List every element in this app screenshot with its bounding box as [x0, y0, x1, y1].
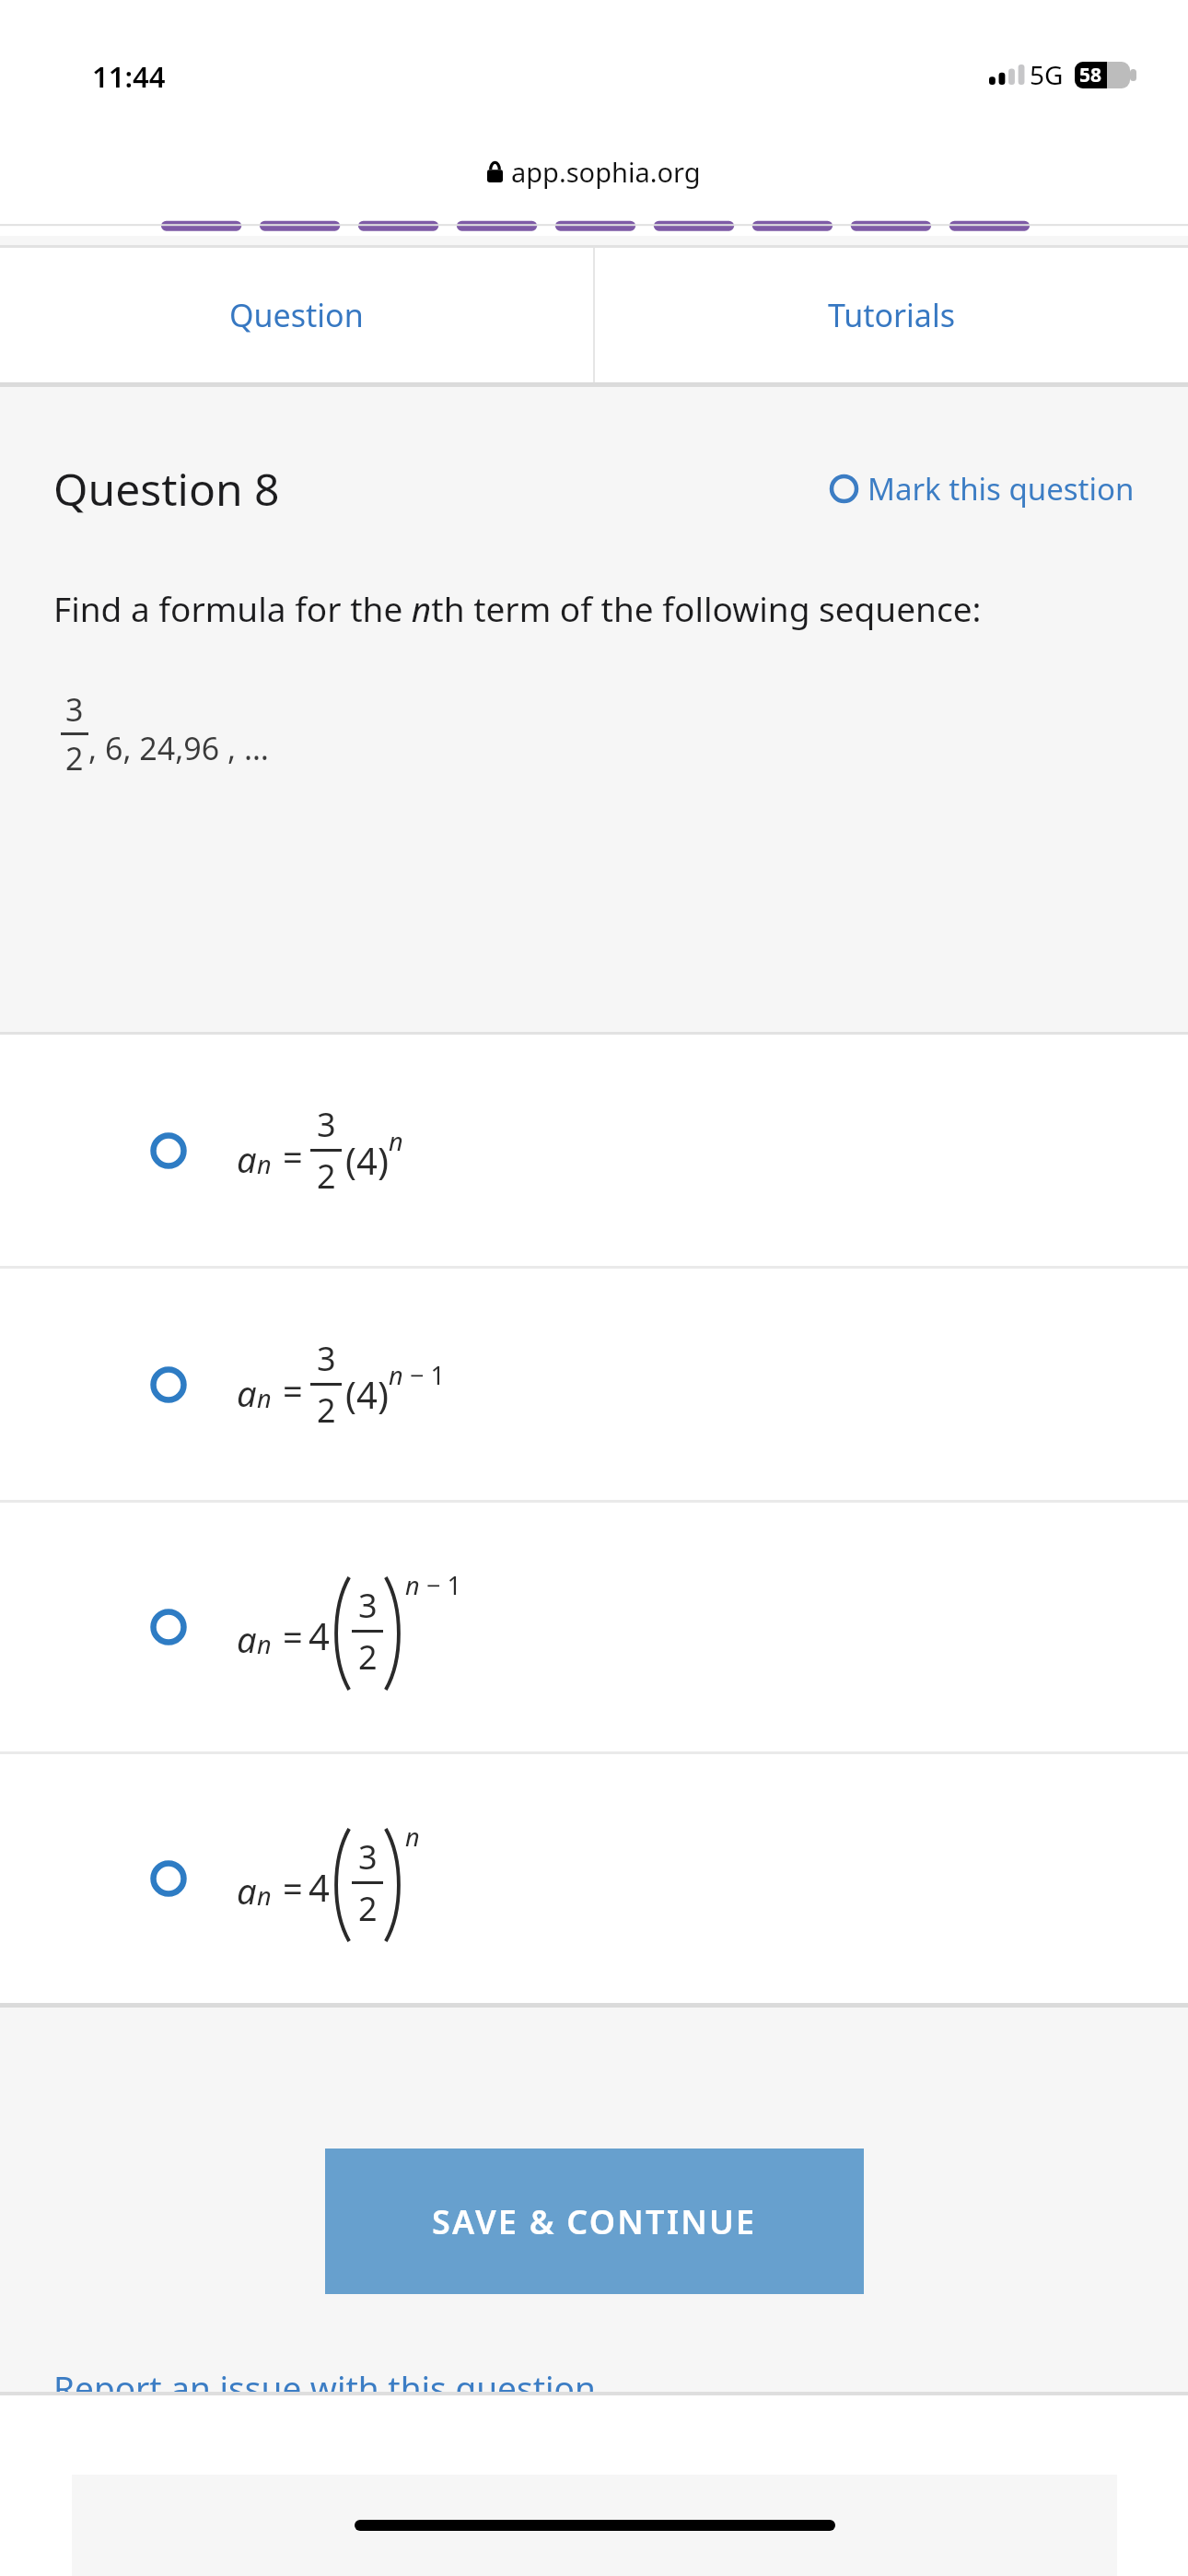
staticText: 3 — [358, 1834, 378, 1879]
staticText: 11:44 — [92, 57, 166, 96]
button[interactable]: Report an issue with this question — [53, 2364, 596, 2392]
button[interactable]: Select this answer — [0, 1269, 1188, 1500]
button[interactable]: Question — [0, 248, 593, 382]
staticText: 3 — [358, 1583, 378, 1628]
staticText: n — [405, 1820, 420, 1854]
other: Select this answer — [150, 1132, 187, 1169]
staticText: a — [237, 1867, 257, 1914]
staticText: (4) — [345, 1369, 389, 1419]
other: Select this answer — [150, 1609, 187, 1645]
staticText: Question — [229, 294, 364, 336]
staticText: Question 8 — [53, 459, 280, 519]
button[interactable]: Tutorials — [595, 248, 1188, 382]
staticText: a — [237, 1369, 257, 1417]
staticText: 2 — [358, 1634, 378, 1680]
staticText: 3 — [317, 1102, 336, 1147]
staticText: 2 — [65, 737, 84, 779]
button[interactable]: Mark this question — [830, 468, 1135, 509]
staticText: = — [283, 1612, 303, 1660]
staticText: n — [389, 1358, 403, 1392]
button[interactable]: SAVE & CONTINUE — [325, 2149, 864, 2294]
staticText: n — [257, 1381, 272, 1415]
staticText: 4 — [309, 1862, 330, 1912]
staticText: = — [283, 1132, 303, 1180]
staticText: n — [257, 1879, 272, 1913]
staticText: 58 — [1079, 62, 1102, 88]
staticText: = — [283, 1366, 303, 1414]
button[interactable]: Select this answer — [0, 1035, 1188, 1266]
staticText: a — [237, 1135, 257, 1183]
staticText: 2 — [317, 1388, 336, 1433]
staticText: 5G — [1030, 57, 1064, 92]
other: Select this answer — [150, 1366, 187, 1403]
staticText: app.sophia.org — [511, 154, 701, 190]
staticText: , 6, 24,96 , … — [88, 727, 269, 769]
staticText: Find a formula for the nth term of the f… — [53, 585, 982, 631]
button[interactable]: Select this answer — [0, 1503, 1188, 1751]
staticText: (4) — [345, 1135, 389, 1185]
staticText: Mark this question — [868, 468, 1135, 509]
staticText: 2 — [317, 1153, 336, 1199]
staticText: 4 — [309, 1610, 330, 1660]
staticText: a — [237, 1615, 257, 1663]
staticText: 2 — [358, 1886, 378, 1931]
staticText: n — [257, 1627, 272, 1661]
staticText: n — [257, 1147, 272, 1181]
staticText: SAVE & CONTINUE — [432, 2199, 757, 2244]
staticText: n — [389, 1124, 403, 1158]
staticText: − 1 — [403, 1358, 445, 1392]
staticText: Tutorials — [828, 294, 956, 336]
button[interactable]: Select this answer — [0, 1754, 1188, 2003]
staticText: = — [283, 1864, 303, 1912]
staticText: − 1 — [420, 1568, 461, 1602]
staticText: n — [405, 1568, 420, 1602]
staticText: 3 — [317, 1336, 336, 1381]
other: Select this answer — [150, 1860, 187, 1897]
staticText: 3 — [65, 688, 84, 731]
